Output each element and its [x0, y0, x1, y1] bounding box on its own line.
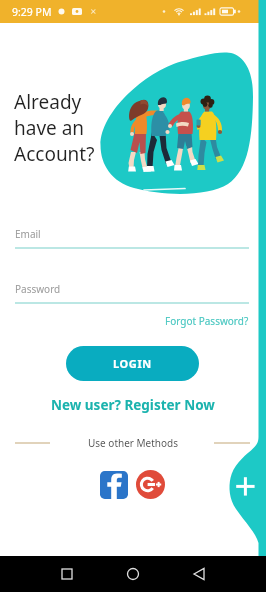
button[interactable]: New user? Register Now [0, 396, 266, 414]
staticText: New user? Register Now [51, 396, 215, 414]
staticText: Password [15, 282, 61, 296]
staticText: Account? [14, 141, 95, 167]
staticText: 9:29 PM [12, 5, 52, 19]
staticText: Email [15, 227, 41, 241]
button[interactable]: Password [0, 282, 266, 304]
staticText: LOGIN [113, 356, 152, 371]
staticText: have an [14, 115, 85, 141]
staticText: Already [14, 89, 82, 115]
staticText: Forgot Password? [165, 314, 249, 328]
button[interactable]: Sign in with Google Plus [136, 470, 165, 499]
button[interactable]: LOGIN [66, 346, 199, 381]
button[interactable]: Sign in with Facebook [100, 471, 128, 499]
button[interactable]: Forgot Password? [149, 313, 249, 329]
staticText: Use other Methods [88, 436, 179, 450]
button[interactable]: Email [0, 227, 266, 249]
